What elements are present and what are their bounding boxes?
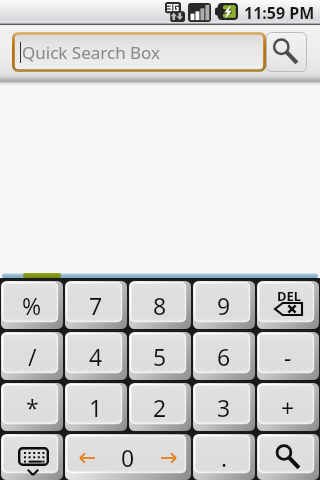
- button[interactable]: 9: [193, 281, 255, 329]
- button[interactable]: 1: [65, 383, 127, 431]
- button[interactable]: DEL: [257, 281, 319, 329]
- staticText: 9: [217, 290, 231, 321]
- staticText: /: [28, 341, 37, 372]
- button[interactable]: /: [1, 332, 63, 380]
- staticText: 8: [153, 290, 167, 321]
- staticText: %: [22, 290, 42, 321]
- staticText: 4: [89, 341, 103, 372]
- button[interactable]: 8: [129, 281, 191, 329]
- staticText: 0: [121, 442, 135, 473]
- staticText: 6: [217, 341, 231, 372]
- button[interactable]: 4: [65, 332, 127, 380]
- button[interactable]: %: [1, 281, 63, 329]
- button[interactable]: +: [257, 383, 319, 431]
- button[interactable]: 2: [129, 383, 191, 431]
- staticText: 11:59 PM: [244, 2, 315, 24]
- button[interactable]: Quick Search Box: [12, 32, 266, 72]
- button[interactable]: *: [1, 383, 63, 431]
- staticText: -: [284, 341, 292, 372]
- button[interactable]: 7: [65, 281, 127, 329]
- staticText: Quick Search Box: [22, 41, 161, 64]
- staticText: 7: [89, 290, 103, 321]
- staticText: 2: [153, 392, 167, 423]
- button[interactable]: Search: [266, 32, 307, 72]
- staticText: +: [281, 392, 295, 423]
- staticText: 5: [153, 341, 167, 372]
- button[interactable]: 0: [65, 434, 191, 480]
- button[interactable]: 3: [193, 383, 255, 431]
- staticText: 1: [89, 392, 103, 423]
- button[interactable]: Hide keyboard: [1, 434, 63, 480]
- staticText: *: [26, 392, 39, 423]
- staticText: .: [221, 442, 228, 473]
- staticText: DEL: [277, 287, 302, 305]
- button[interactable]: -: [257, 332, 319, 380]
- staticText: 3: [217, 392, 231, 423]
- button[interactable]: Search: [257, 434, 319, 480]
- button[interactable]: .: [193, 434, 255, 480]
- button[interactable]: 6: [193, 332, 255, 380]
- button[interactable]: 5: [129, 332, 191, 380]
